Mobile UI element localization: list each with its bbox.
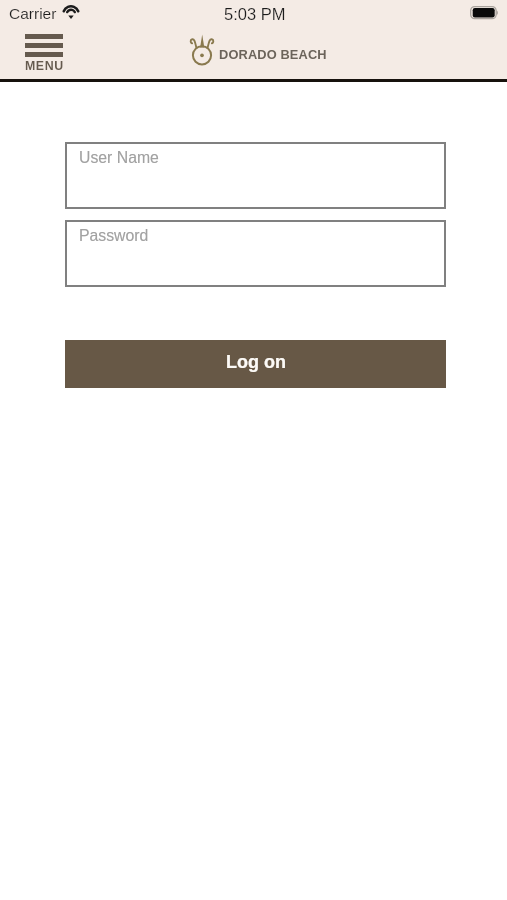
button[interactable]: Menu — [21, 30, 67, 73]
staticText: Log on — [226, 352, 286, 372]
staticText: 5:03 PM — [224, 5, 286, 23]
button[interactable]: Log on — [65, 340, 446, 388]
staticText: MENU — [25, 59, 64, 73]
button[interactable]: Password — [65, 220, 446, 287]
button[interactable]: User Name — [65, 142, 446, 209]
staticText: Password — [79, 227, 149, 245]
staticText: DORADO BEACH — [219, 47, 327, 61]
staticText: Carrier — [9, 5, 57, 22]
staticText: User Name — [79, 149, 159, 167]
